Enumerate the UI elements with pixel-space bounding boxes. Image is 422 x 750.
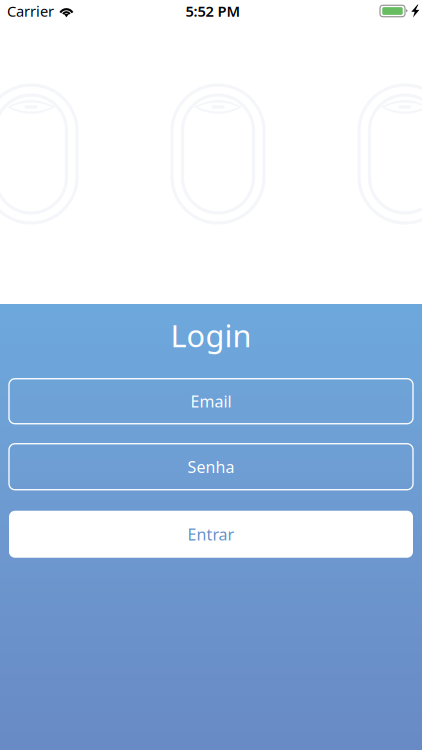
staticText: Login [170,315,251,356]
button[interactable]: Email [9,379,413,424]
button[interactable]: Entrar [9,511,413,558]
staticText: Carrier [7,1,54,21]
staticText: Senha [187,456,234,477]
button[interactable]: Senha [9,444,413,490]
staticText: Email [190,391,231,412]
staticText: 5:52 PM [185,1,240,21]
staticText: Entrar [187,524,234,545]
